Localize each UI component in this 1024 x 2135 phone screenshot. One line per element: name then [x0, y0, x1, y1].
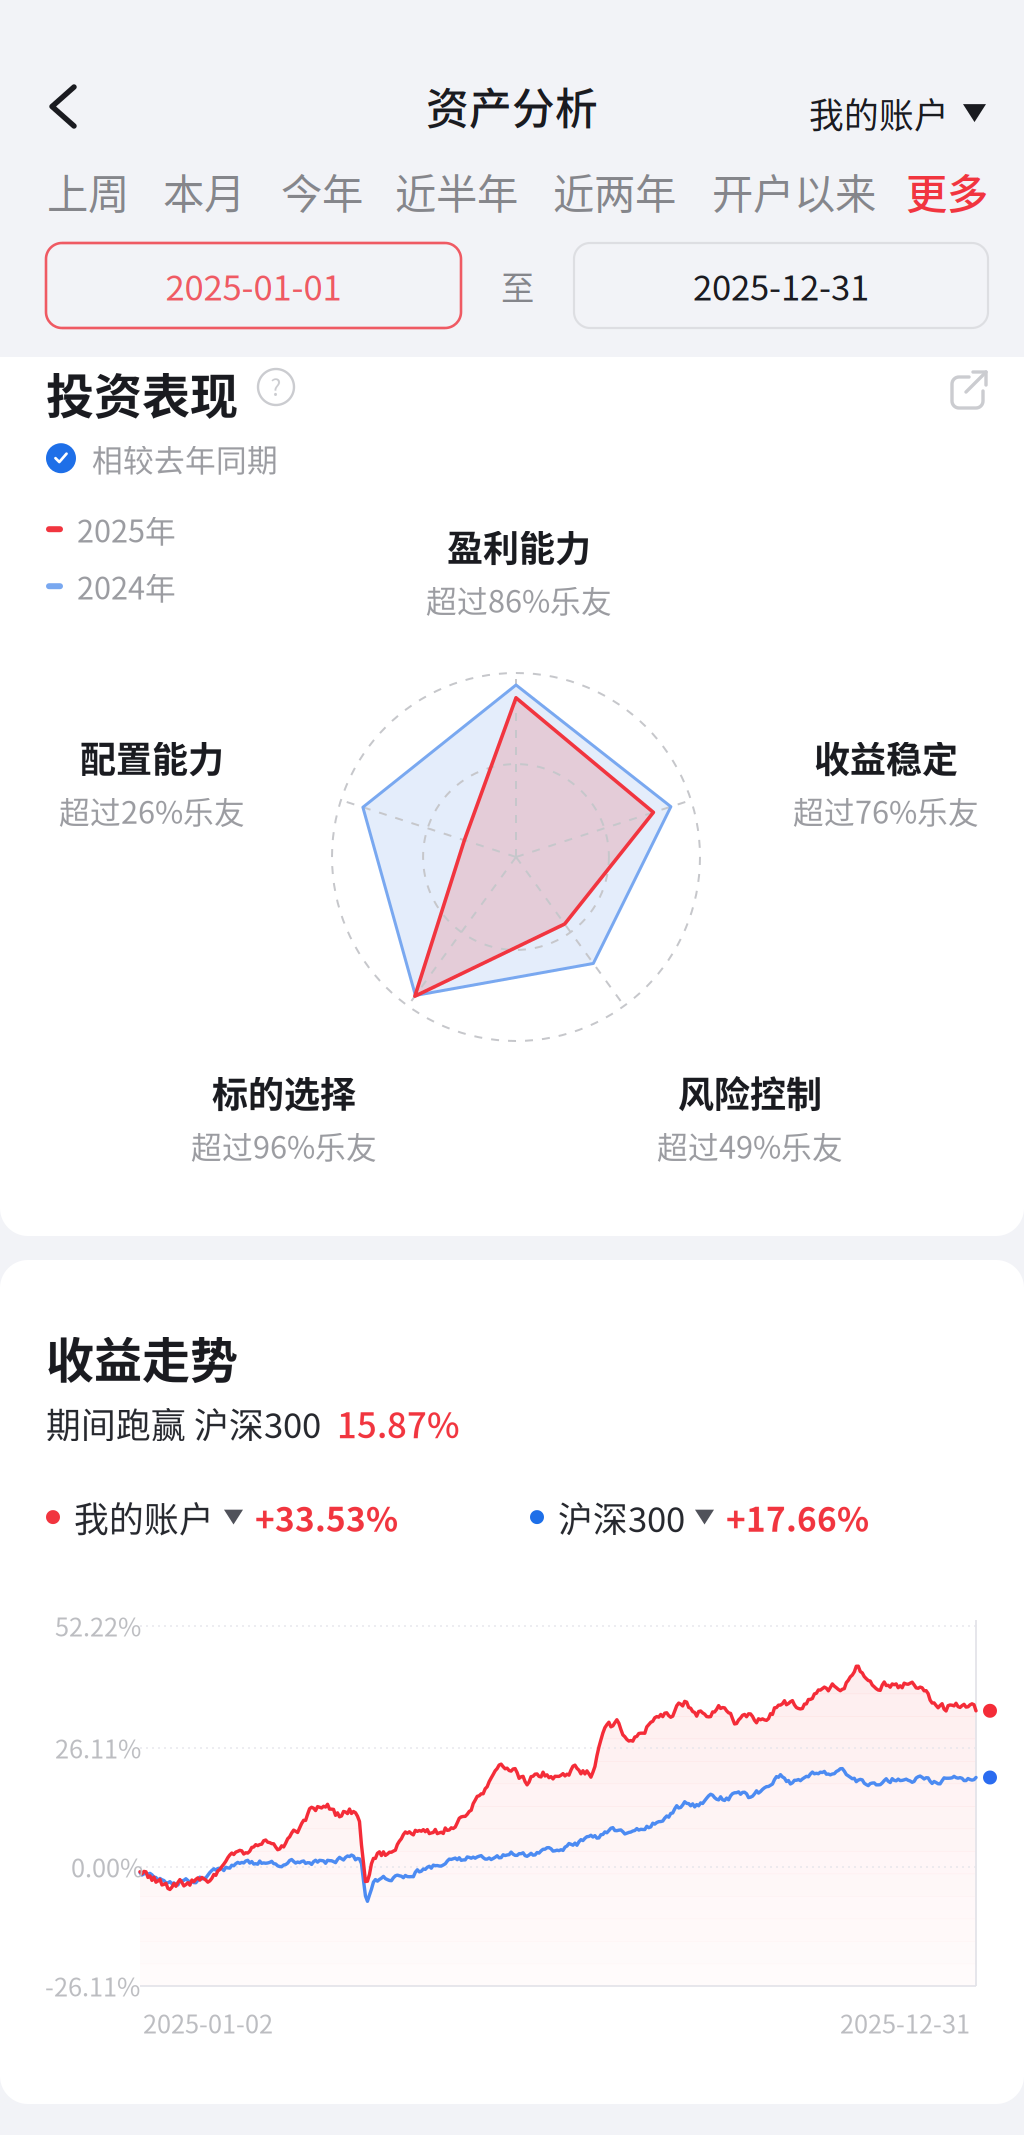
staticText: 2025-01-02	[143, 2004, 273, 2041]
staticText: 标的选择	[212, 1066, 356, 1118]
staticText: -26.11%	[45, 1967, 140, 2004]
staticText: 2025-12-31	[840, 2004, 970, 2041]
staticText: 超过86%乐友	[426, 577, 612, 621]
staticText: 配置能力	[80, 731, 224, 783]
staticText: 沪深300	[558, 1492, 685, 1542]
button[interactable]: 2025-12-31	[574, 243, 988, 328]
staticText: 我的账户	[74, 1492, 214, 1542]
staticText: 资产分析	[426, 75, 598, 137]
button[interactable]: 近两年	[537, 149, 692, 233]
button[interactable]: 开户以来	[696, 149, 892, 233]
staticText: 收益稳定	[814, 731, 958, 783]
staticText: 近半年	[395, 161, 518, 221]
button[interactable]: 更多	[890, 149, 1004, 233]
staticText: 超过49%乐友	[657, 1123, 843, 1167]
button[interactable]: 近半年	[379, 149, 534, 233]
staticText: 今年	[281, 161, 363, 221]
button[interactable]: 今年	[265, 149, 379, 233]
staticText: 相较去年同期	[92, 436, 278, 480]
staticText: 近两年	[553, 161, 676, 221]
button[interactable]: 我的账户	[46, 1484, 398, 1550]
staticText: 0.00%	[71, 1848, 143, 1885]
staticText: 上周	[47, 161, 129, 221]
staticText: 期间跑赢 沪深300	[46, 1398, 337, 1448]
button[interactable]: 我的账户	[803, 74, 992, 152]
staticText: 2024年	[77, 564, 176, 608]
staticText: 开户以来	[712, 161, 876, 221]
button[interactable]: Back	[28, 63, 98, 150]
staticText: +33.53%	[255, 1493, 398, 1541]
staticText: 52.22%	[55, 1607, 141, 1644]
staticText: 超过76%乐友	[793, 788, 979, 832]
staticText: 盈利能力	[447, 520, 591, 572]
staticText: 2025-12-31	[693, 260, 869, 311]
staticText: 2025年	[77, 507, 176, 551]
staticText: 本月	[163, 161, 245, 221]
staticText: 26.11%	[55, 1729, 141, 1766]
staticText: 超过96%乐友	[191, 1123, 377, 1167]
staticText: 投资表现	[46, 358, 238, 427]
staticText: 超过26%乐友	[59, 788, 245, 832]
button[interactable]: 2025-01-01	[46, 243, 461, 328]
staticText: ?	[270, 370, 281, 402]
staticText: 2025-01-01	[165, 260, 341, 311]
staticText: +17.66%	[726, 1493, 869, 1541]
button[interactable]: 本月	[147, 149, 261, 233]
button[interactable]: 上周	[31, 149, 145, 233]
staticText: 15.87%	[337, 1398, 460, 1448]
staticText: 更多	[906, 161, 988, 221]
staticText: 至	[501, 261, 534, 310]
staticText: 我的账户	[809, 88, 949, 138]
staticText: 收益走势	[46, 1322, 238, 1391]
button[interactable]: Open full report	[945, 368, 991, 414]
button[interactable]: 沪深300	[530, 1484, 869, 1550]
staticText: 风险控制	[678, 1066, 822, 1118]
